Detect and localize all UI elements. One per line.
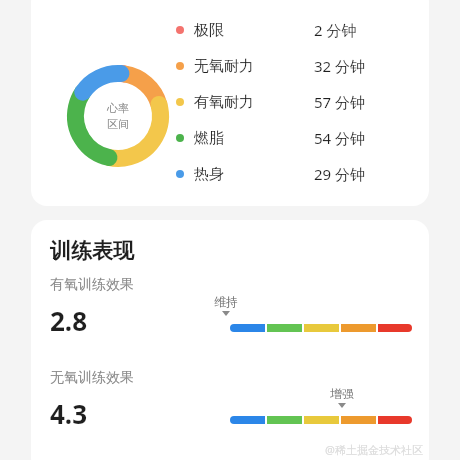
staticText: 无氧训练效果	[50, 369, 134, 387]
staticText: 区间	[107, 117, 129, 131]
staticText: 有氧耐力	[194, 93, 254, 112]
staticText: 无氧耐力	[194, 57, 254, 76]
staticText: 训练表现	[50, 238, 134, 264]
button[interactable]: 燃脂	[176, 125, 421, 151]
staticText: @稀土掘金技术社区	[325, 442, 423, 457]
staticText: 燃脂	[194, 129, 224, 148]
staticText: 54 分钟	[314, 128, 366, 148]
button[interactable]: 极限	[176, 17, 421, 43]
staticText: 有氧训练效果	[50, 276, 134, 294]
button[interactable]: Training effect scale	[230, 324, 412, 332]
staticText: 4.3	[50, 396, 88, 431]
staticText: 2.8	[50, 303, 88, 338]
staticText: 增强	[330, 386, 354, 401]
staticText: 心率	[107, 101, 129, 115]
staticText: 热身	[194, 165, 224, 184]
button[interactable]: 有氧耐力	[176, 89, 421, 115]
button[interactable]: Training effect scale	[230, 416, 412, 424]
button[interactable]: 无氧耐力	[176, 53, 421, 79]
button[interactable]: 热身	[176, 161, 421, 187]
staticText: 32 分钟	[314, 56, 366, 76]
staticText: 29 分钟	[314, 164, 366, 184]
staticText: 维持	[214, 294, 238, 309]
staticText: 57 分钟	[314, 92, 366, 112]
staticText: 极限	[194, 21, 224, 40]
staticText: 2 分钟	[314, 20, 357, 40]
